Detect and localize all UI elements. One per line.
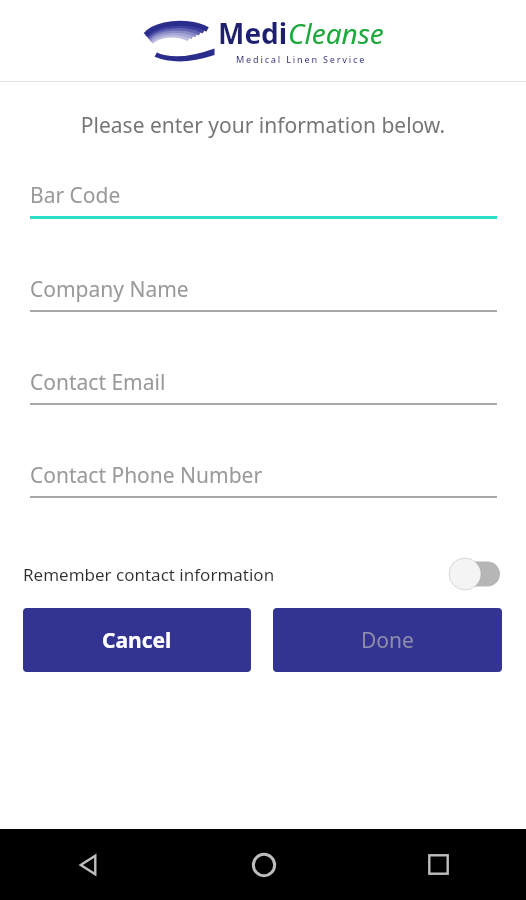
- button[interactable]: Bar Code: [0, 181, 526, 219]
- button[interactable]: Contact Phone Number: [0, 461, 526, 498]
- staticText: Done: [361, 626, 414, 655]
- staticText: Cancel: [102, 626, 172, 655]
- button[interactable]: Home: [176, 829, 351, 900]
- staticText: Remember contact information: [23, 563, 275, 586]
- staticText: Medical Linen Service: [236, 53, 367, 65]
- staticText: Bar Code: [30, 181, 121, 210]
- staticText: Cleanse: [288, 14, 384, 52]
- staticText: Contact Phone Number: [30, 461, 263, 490]
- staticText: Contact Email: [30, 368, 166, 397]
- button[interactable]: Remember contact information: [0, 552, 526, 596]
- button[interactable]: Done: [273, 608, 502, 672]
- staticText: Company Name: [30, 275, 189, 304]
- button[interactable]: Back: [0, 829, 176, 900]
- staticText: Please enter your information below.: [0, 111, 526, 140]
- button[interactable]: Company Name: [0, 275, 526, 312]
- button[interactable]: Recent apps: [351, 829, 526, 900]
- button[interactable]: Remember contact information toggle: [448, 558, 500, 590]
- button[interactable]: Contact Email: [0, 368, 526, 405]
- button[interactable]: Cancel: [23, 608, 251, 672]
- staticText: Medi: [218, 14, 288, 52]
